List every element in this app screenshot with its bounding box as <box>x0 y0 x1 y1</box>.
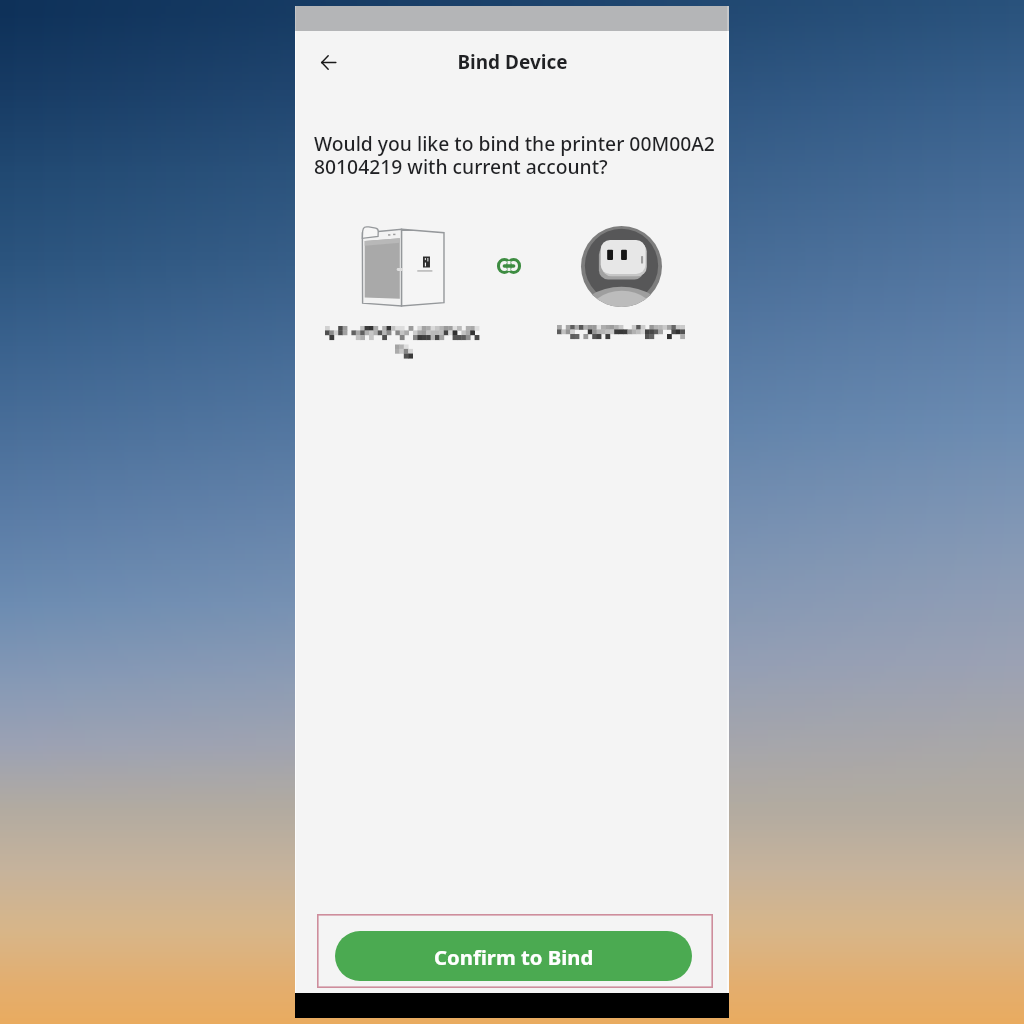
staticText: Confirm to Bind <box>434 943 594 971</box>
button[interactable]: Back <box>308 42 348 82</box>
staticText: Would you like to bind the printer 00M00… <box>314 130 715 180</box>
staticText: Bind Device <box>457 49 568 75</box>
button[interactable]: Confirm to Bind <box>335 931 692 981</box>
